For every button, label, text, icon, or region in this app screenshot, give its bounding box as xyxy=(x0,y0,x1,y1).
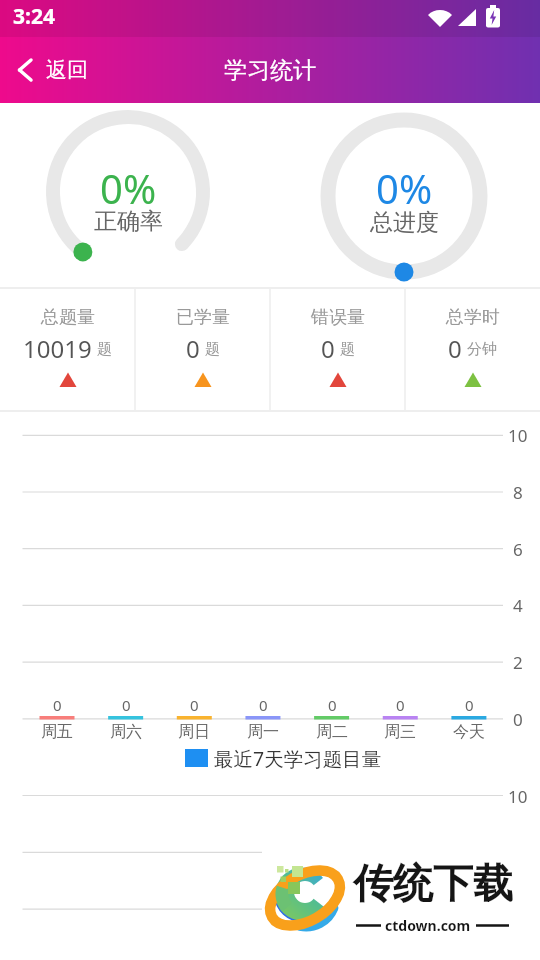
staticText: 0 xyxy=(465,695,474,715)
staticText: 学习统计 xyxy=(224,56,316,85)
staticText: 8 xyxy=(513,481,523,504)
staticText: 已学量 xyxy=(176,306,230,329)
staticText: 错误量 xyxy=(311,306,365,329)
staticText: 6 xyxy=(513,538,523,561)
staticText: 题 xyxy=(340,340,355,359)
staticText: 总题量 xyxy=(41,306,95,329)
staticText: 总学时 xyxy=(446,306,500,329)
staticText: 3:24 xyxy=(13,2,55,31)
staticText: 0 xyxy=(448,332,462,362)
button[interactable] xyxy=(0,40,110,96)
button[interactable] xyxy=(270,289,405,411)
staticText: 分钟 xyxy=(467,340,497,359)
staticText: 0 xyxy=(53,695,62,715)
staticText: 4 xyxy=(513,594,523,617)
button[interactable] xyxy=(135,289,270,411)
staticText: 10 xyxy=(508,785,528,808)
staticText: 0 xyxy=(122,695,131,715)
staticText: 周一 xyxy=(247,722,279,742)
staticText: 0% xyxy=(376,161,433,215)
staticText: 0 xyxy=(186,332,200,362)
staticText: 周二 xyxy=(316,722,348,742)
staticText: 题 xyxy=(97,340,112,359)
staticText: 0% xyxy=(100,161,157,215)
staticText: 0 xyxy=(190,695,199,715)
staticText: 今天 xyxy=(453,722,485,742)
staticText: 10 xyxy=(508,424,528,447)
staticText: 题 xyxy=(205,340,220,359)
staticText: 最近7天学习题目量 xyxy=(214,745,382,772)
button[interactable] xyxy=(0,289,135,411)
staticText: ctdown.com xyxy=(385,916,471,935)
button[interactable]: 最近7天学习题目量 xyxy=(182,744,392,772)
staticText: 周日 xyxy=(178,722,210,742)
staticText: 10019 xyxy=(23,332,92,362)
staticText: 传统下载 xyxy=(353,858,513,908)
staticText: 0 xyxy=(396,695,405,715)
staticText: 0 xyxy=(328,695,337,715)
staticText: 0 xyxy=(513,708,523,731)
staticText: 正确率 xyxy=(94,207,163,236)
button[interactable] xyxy=(405,289,540,411)
staticText: 2 xyxy=(513,651,523,674)
staticText: 周五 xyxy=(41,722,73,742)
staticText: 0 xyxy=(321,332,335,362)
staticText: 返回 xyxy=(46,57,88,83)
staticText: 0 xyxy=(259,695,268,715)
staticText: 总进度 xyxy=(370,208,439,237)
staticText: 周三 xyxy=(384,722,416,742)
staticText: 周六 xyxy=(110,722,142,742)
